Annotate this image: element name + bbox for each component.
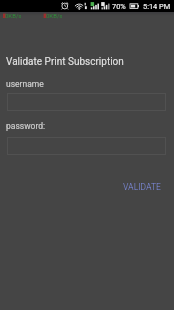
button[interactable]: password field bbox=[7, 137, 166, 155]
button[interactable]: username field bbox=[7, 93, 166, 111]
staticText: 0KB/s bbox=[5, 12, 22, 19]
staticText: username bbox=[6, 79, 44, 89]
staticText: 70% bbox=[112, 2, 126, 11]
staticText: 5:14 PM bbox=[143, 2, 171, 11]
staticText: password: bbox=[6, 121, 46, 131]
staticText: Validate Print Subscription bbox=[6, 56, 124, 68]
staticText: 0KB/s bbox=[46, 12, 63, 19]
button[interactable]: VALIDATE bbox=[115, 177, 169, 197]
staticText: VALIDATE bbox=[123, 182, 161, 192]
